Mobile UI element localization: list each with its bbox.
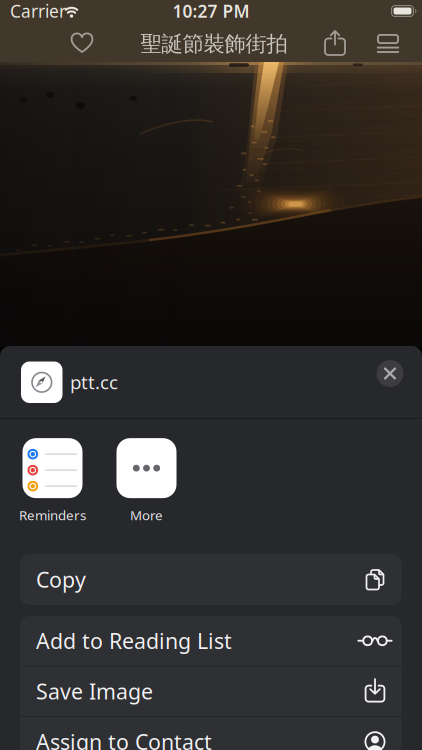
button[interactable]: Save Image bbox=[20, 666, 401, 716]
staticText: 聖誕節裝飾街拍 bbox=[140, 31, 287, 57]
button[interactable]: More bbox=[109, 440, 183, 522]
button[interactable]: Reminders bbox=[15, 440, 89, 522]
staticText: Carrier bbox=[10, 0, 66, 22]
staticText: ptt.cc bbox=[70, 370, 118, 394]
button[interactable]: Gallery list bbox=[377, 34, 399, 53]
staticText: Reminders bbox=[19, 506, 86, 524]
button[interactable]: Assign to Contact bbox=[20, 717, 401, 750]
button[interactable]: Add to Reading List bbox=[20, 616, 401, 665]
staticText: Assign to Contact bbox=[36, 728, 212, 750]
staticText: More bbox=[130, 506, 163, 524]
staticText: Copy bbox=[36, 565, 86, 594]
staticText: Add to Reading List bbox=[36, 627, 232, 655]
button[interactable]: Close bbox=[376, 360, 403, 387]
button[interactable]: Share bbox=[325, 30, 345, 56]
button[interactable]: Copy bbox=[20, 554, 401, 605]
button[interactable]: Favorite bbox=[70, 32, 94, 54]
staticText: Save Image bbox=[36, 677, 153, 705]
staticText: 10:27 PM bbox=[172, 0, 249, 22]
